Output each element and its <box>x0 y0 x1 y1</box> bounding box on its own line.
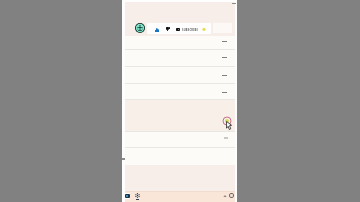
button[interactable]: Action centre <box>229 193 234 198</box>
button[interactable] <box>125 84 235 100</box>
button[interactable]: Channel avatar <box>135 23 145 33</box>
other: Show hidden icons <box>223 194 227 198</box>
button[interactable]: SUBSCRIBE <box>176 26 199 33</box>
button[interactable] <box>125 36 235 50</box>
other: Dislike <box>166 27 170 31</box>
button[interactable]: Photos app <box>124 193 130 199</box>
other: Settings <box>135 193 140 198</box>
button[interactable] <box>125 67 235 84</box>
button[interactable] <box>125 50 235 67</box>
other: Favourite <box>202 27 206 31</box>
button[interactable] <box>125 132 235 148</box>
other: Like <box>155 28 159 32</box>
staticText: SUBSCRIBE <box>182 28 199 32</box>
button[interactable] <box>125 100 235 132</box>
